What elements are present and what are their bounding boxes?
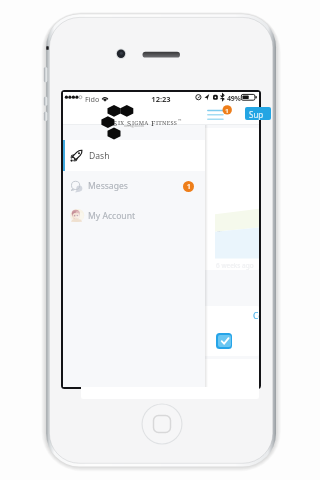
staticText: ™ (178, 118, 182, 124)
staticText: W (217, 227, 224, 237)
staticText: IGMA (132, 119, 149, 127)
staticText: IX (118, 119, 125, 127)
staticText: Sup (249, 109, 264, 120)
button[interactable]: Sup (245, 107, 271, 120)
staticText: My Account (88, 210, 136, 222)
button[interactable]: W (81, 128, 259, 270)
staticText: S (127, 118, 132, 128)
staticText: Messages (88, 180, 128, 192)
button[interactable]: Co (81, 306, 259, 356)
staticText: 49% (227, 94, 241, 104)
staticText: strength.com (124, 124, 144, 128)
button[interactable]: My Account (63, 201, 205, 230)
staticText: 1 (187, 182, 191, 191)
button[interactable]: Open menu (206, 105, 236, 124)
button[interactable] (81, 359, 259, 399)
button[interactable]: Mark complete (216, 333, 232, 349)
staticText: ITNESS (156, 119, 178, 127)
staticText: Dash (89, 150, 110, 162)
staticText: Fido (85, 94, 100, 104)
staticText: F (151, 118, 156, 128)
button[interactable]: Dash (63, 140, 205, 171)
staticText: S (113, 118, 118, 128)
staticText: Co (253, 310, 259, 322)
staticText: 1 (224, 107, 230, 115)
staticText: 6 weeks ago (216, 261, 254, 270)
button[interactable]: Messages (63, 171, 205, 201)
staticText: 12:23 (63, 94, 259, 104)
